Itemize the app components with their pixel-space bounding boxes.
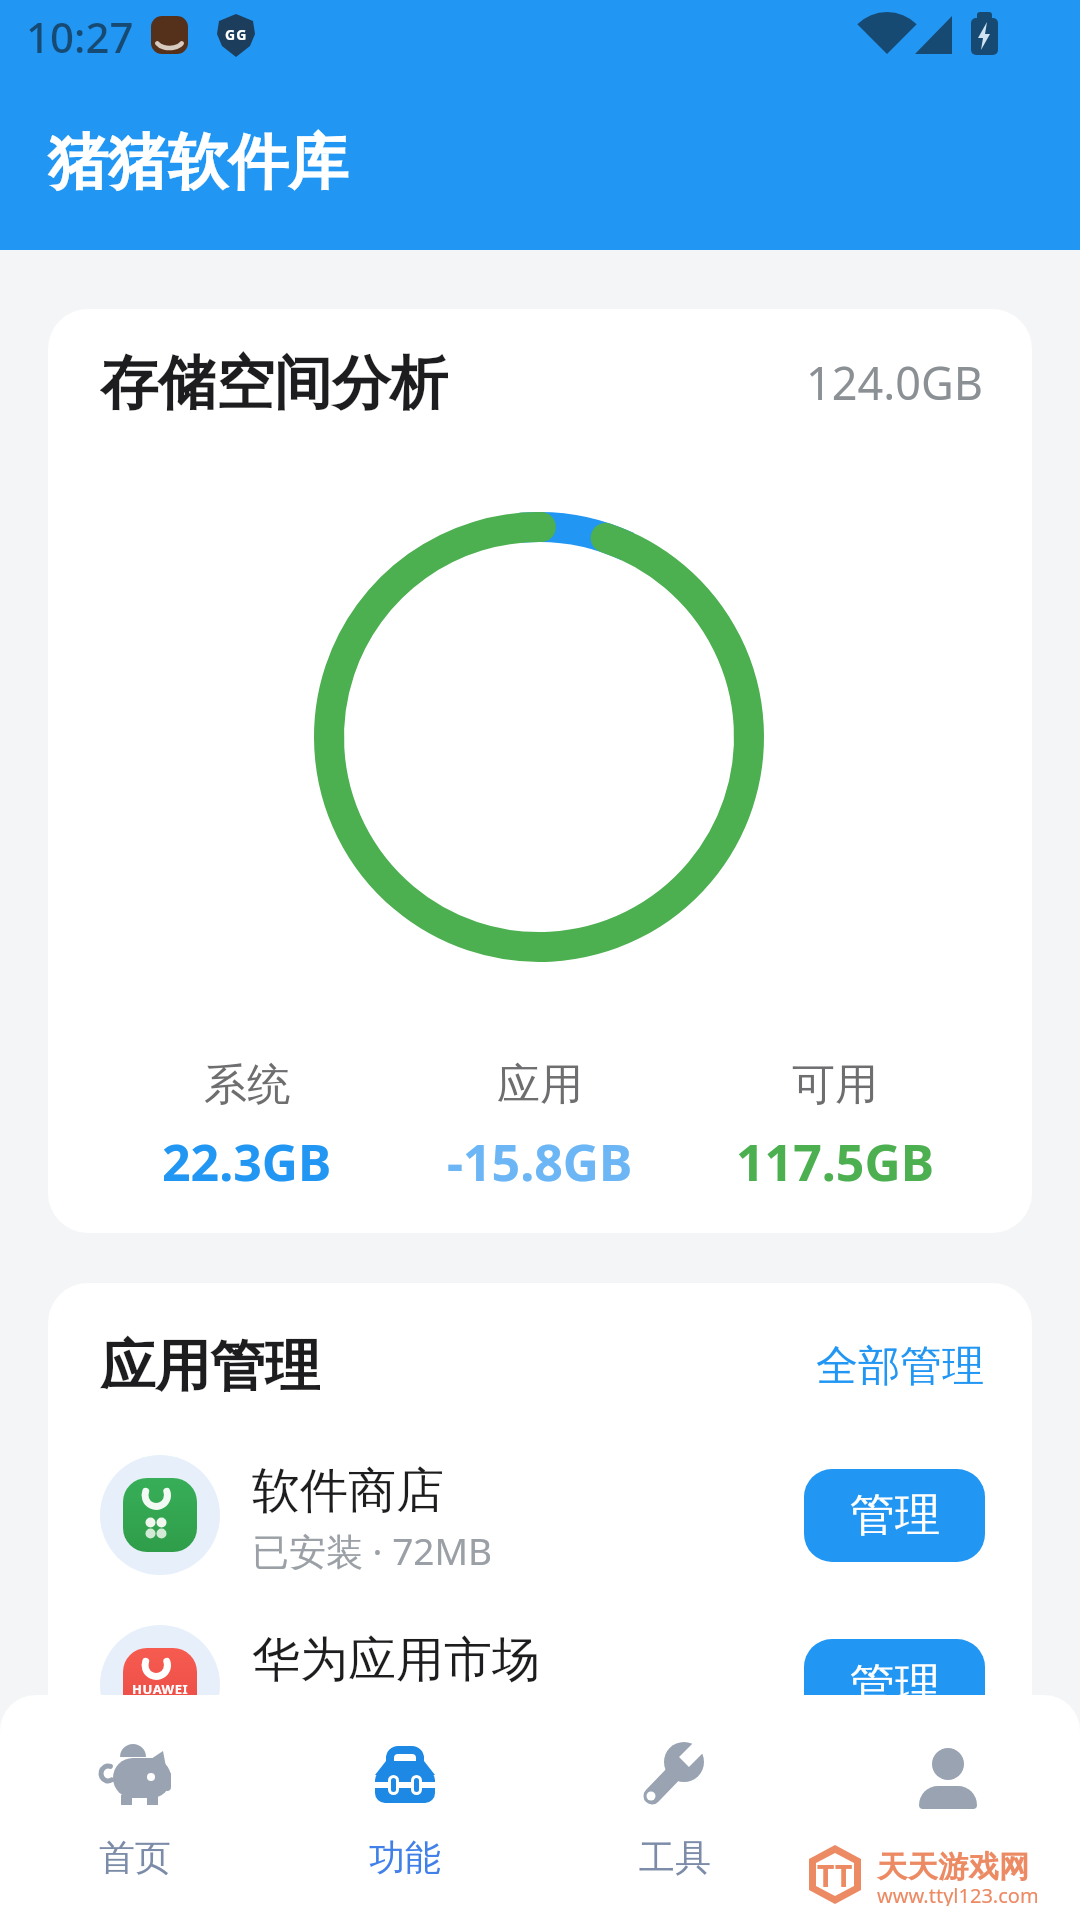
staticText: 可用 <box>792 1058 878 1106</box>
staticText: 应用 <box>497 1058 583 1106</box>
staticText: 软件商店 <box>252 1461 444 1521</box>
staticText: HUAWEI <box>132 1680 189 1698</box>
staticText: 10:27 <box>26 8 134 58</box>
staticText: -15.8GB <box>447 1128 633 1188</box>
staticText: 系统 <box>204 1058 290 1106</box>
staticText: 猪猪软件库 <box>48 125 348 201</box>
staticText: 华为应用市场 <box>252 1630 540 1690</box>
staticText: 存储空间分析 <box>100 347 448 413</box>
staticText: TT <box>817 1855 853 1896</box>
staticText: 全部管理 <box>816 1340 984 1392</box>
staticText: www.ttyl123.com <box>877 1882 1037 1906</box>
button[interactable] <box>35 1715 235 1900</box>
staticText: 117.5GB <box>736 1128 934 1188</box>
staticText: 天天游戏网 <box>877 1848 1030 1886</box>
staticText: 首页 <box>99 1835 171 1880</box>
staticText: 工具 <box>639 1835 711 1880</box>
staticText: GG <box>225 25 248 44</box>
button[interactable] <box>575 1715 775 1900</box>
button[interactable] <box>305 1715 505 1900</box>
staticText: 管理 <box>850 1657 940 1714</box>
staticText: 22.3GB <box>162 1128 332 1188</box>
staticText: 124.0GB <box>806 352 984 408</box>
button[interactable]: 管理 <box>804 1469 985 1562</box>
button[interactable]: 管理 <box>804 1639 985 1732</box>
staticText: 管理 <box>850 1487 940 1544</box>
button[interactable]: 全部管理 <box>584 1340 984 1392</box>
staticText: 已安装 · 72MB <box>252 1525 493 1571</box>
staticText: 应用管理 <box>100 1332 320 1398</box>
button[interactable] <box>845 1715 1045 1900</box>
staticText: 功能 <box>369 1835 441 1880</box>
